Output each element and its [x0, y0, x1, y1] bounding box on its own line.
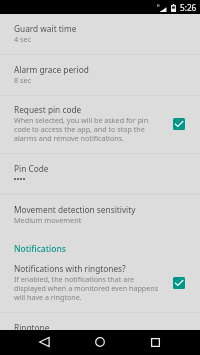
- staticText: If enabled, the notifications that are d…: [14, 274, 161, 302]
- button[interactable]: Guard wait time: [0, 14, 200, 54]
- staticText: Notifications: [14, 243, 66, 255]
- button[interactable]: Back: [22, 330, 66, 354]
- staticText: Medium movement: [14, 215, 82, 225]
- button[interactable]: Request pin code: [0, 96, 200, 153]
- staticText: 5:26: [180, 2, 197, 13]
- button[interactable]: Recent apps: [133, 330, 177, 354]
- staticText: Request pin code: [14, 104, 82, 115]
- staticText: Movement detection sensitivity: [14, 204, 136, 215]
- staticText: 4 sec: [14, 34, 32, 44]
- staticText: Pin Code: [14, 163, 49, 174]
- staticText: Ringtone: [14, 322, 50, 330]
- button[interactable]: Alarm grace period: [0, 55, 200, 95]
- staticText: Notifications with ringtones?: [14, 263, 126, 274]
- button[interactable]: Pin Code: [0, 154, 200, 194]
- staticText: Guard wait time: [14, 23, 77, 34]
- button[interactable]: Notifications with ringtones?: [0, 255, 200, 312]
- staticText: When selected, you will be asked for pin…: [14, 115, 161, 143]
- staticText: 8 sec: [14, 75, 32, 85]
- button[interactable]: Ringtone: [0, 313, 200, 330]
- button[interactable]: Movement detection sensitivity: [0, 195, 200, 235]
- staticText: Alarm grace period: [14, 64, 89, 75]
- button[interactable]: Home: [78, 330, 122, 354]
